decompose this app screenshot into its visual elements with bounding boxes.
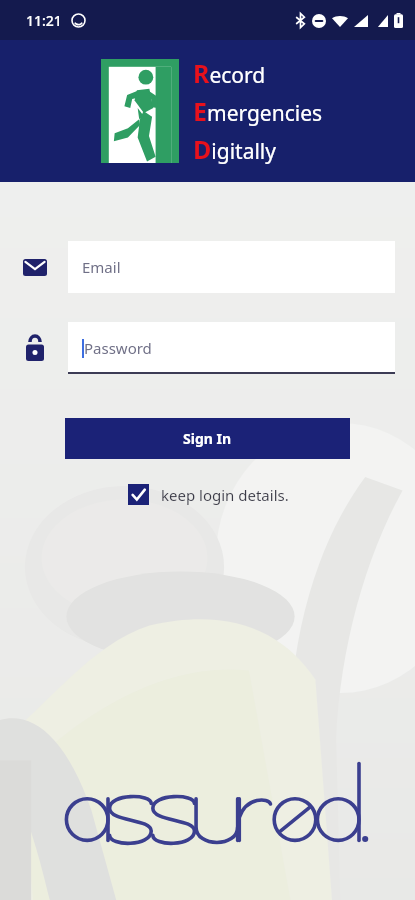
button[interactable]: Sign In bbox=[65, 418, 350, 459]
staticText: Emergencies bbox=[193, 94, 323, 128]
staticText: Record bbox=[193, 56, 266, 90]
button[interactable]: Email bbox=[68, 241, 395, 293]
button[interactable]: Password bbox=[68, 322, 395, 374]
staticText: Digitally bbox=[193, 132, 276, 166]
staticText: keep login details. bbox=[161, 485, 289, 505]
staticText: Sign In bbox=[183, 429, 232, 448]
button[interactable]: keep login details. bbox=[128, 484, 289, 505]
staticText: Email bbox=[82, 257, 121, 277]
other: Email bbox=[23, 259, 47, 276]
staticText: 11:21 bbox=[26, 11, 62, 30]
other: Password bbox=[26, 335, 44, 361]
staticText: Password bbox=[84, 338, 152, 358]
